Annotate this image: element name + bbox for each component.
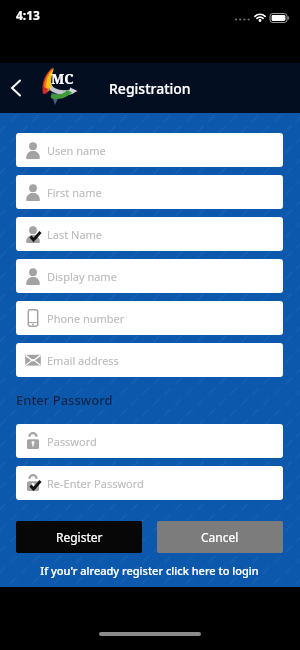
button[interactable]: If you'r already register click here to … <box>16 563 283 578</box>
button[interactable]: First name <box>16 175 283 209</box>
button[interactable]: Email address <box>16 343 283 377</box>
staticText: Last Name <box>47 227 103 242</box>
staticText: Re-Enter Password <box>47 476 144 491</box>
button[interactable]: Phone number <box>16 301 283 335</box>
staticText: If you'r already register click here to … <box>40 563 259 578</box>
button[interactable]: Cancel <box>157 521 283 553</box>
staticText: Enter Password <box>16 391 113 409</box>
staticText: Phone number <box>47 311 125 326</box>
button[interactable]: Register <box>16 521 142 553</box>
staticText: First name <box>47 185 102 200</box>
button[interactable]: Usen name <box>16 133 283 167</box>
button[interactable]: Display name <box>16 259 283 293</box>
staticText: Display name <box>47 269 117 284</box>
staticText: Register <box>56 529 103 545</box>
button[interactable]: MC <box>0 63 300 113</box>
staticText: Registration <box>109 79 191 98</box>
button[interactable]: Re-Enter Password <box>16 466 283 500</box>
button[interactable]: Password <box>16 424 283 458</box>
button[interactable]: Last Name <box>16 217 283 251</box>
staticText: 4:13 <box>16 7 40 23</box>
staticText: Password <box>47 434 97 449</box>
staticText: Email address <box>47 353 119 368</box>
staticText: Usen name <box>47 143 106 158</box>
staticText: MC <box>51 69 74 88</box>
staticText: Cancel <box>201 529 239 545</box>
